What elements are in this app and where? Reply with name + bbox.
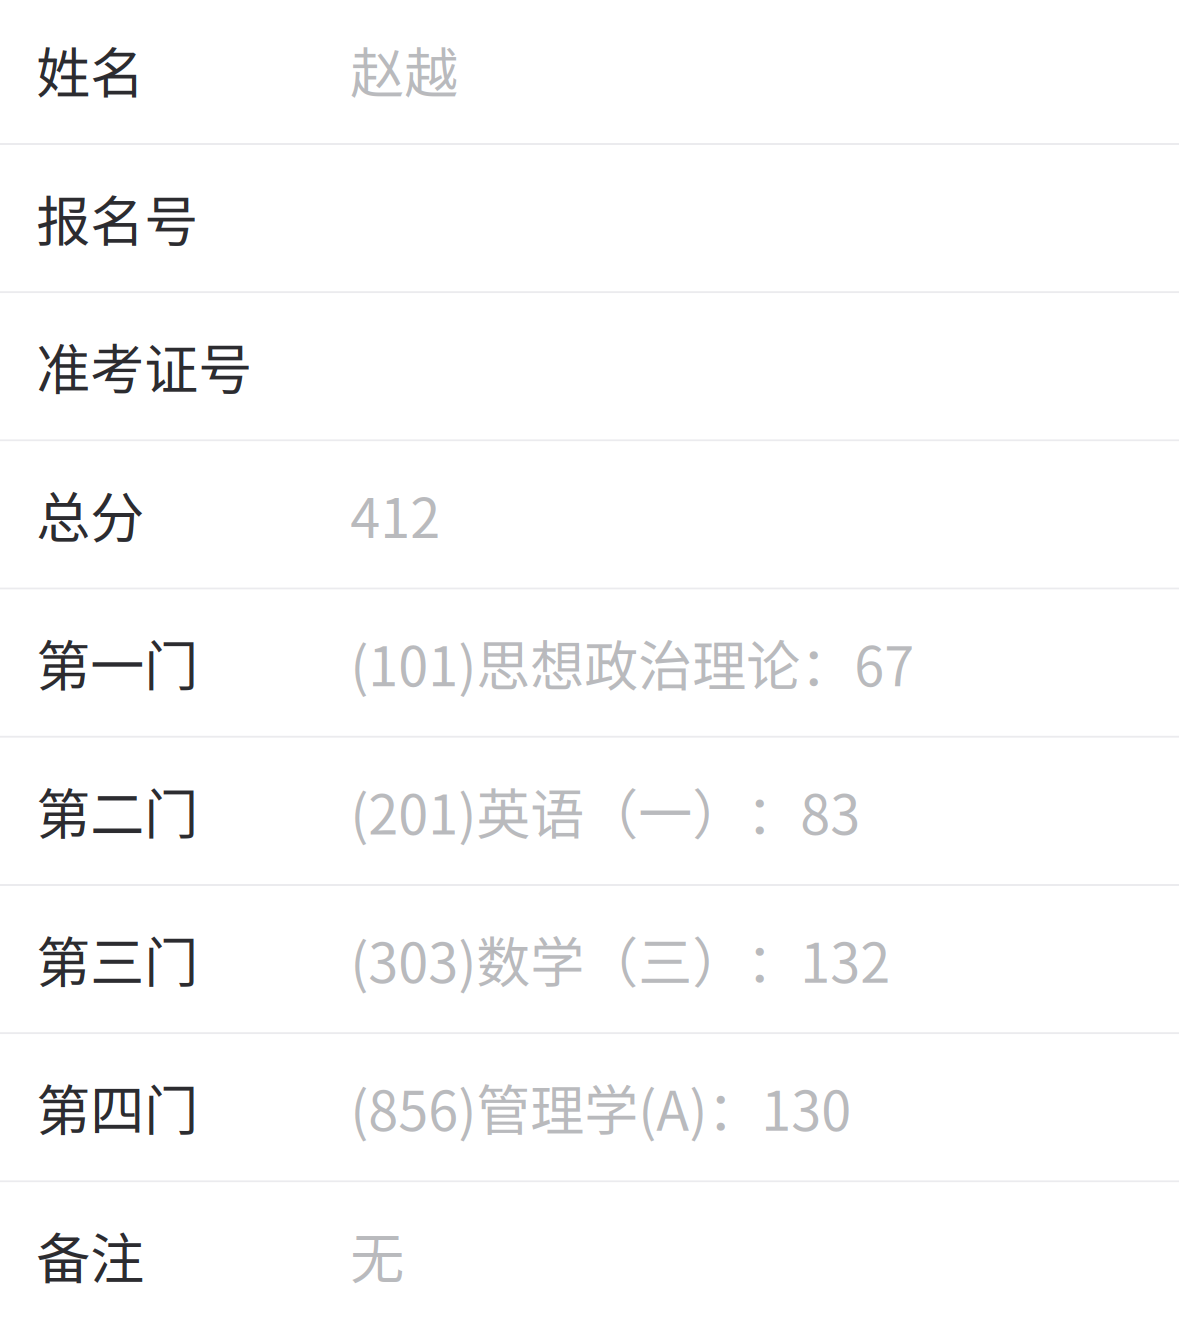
button[interactable]: 总分 (0, 441, 1179, 590)
staticText: 无 (350, 1216, 404, 1295)
button[interactable]: 第三门 (0, 886, 1179, 1034)
staticText: (856)管理学(A)：130 (350, 1068, 851, 1146)
button[interactable]: 第四门 (0, 1034, 1179, 1182)
button[interactable]: 准考证号 (0, 293, 1179, 441)
button[interactable]: 备注 (0, 1182, 1179, 1329)
button[interactable]: 报名号 (0, 145, 1179, 293)
staticText: 第四门 (36, 1068, 198, 1146)
staticText: 第二门 (36, 772, 198, 850)
staticText: 赵越 (350, 31, 458, 109)
staticText: 报名号 (36, 179, 198, 257)
staticText: 备注 (36, 1216, 144, 1295)
staticText: (201)英语（一）：83 (350, 772, 860, 850)
staticText: 姓名 (36, 31, 144, 109)
staticText: 第一门 (36, 624, 198, 702)
staticText: (303)数学（三）：132 (350, 920, 890, 998)
staticText: 412 (350, 475, 440, 554)
button[interactable]: 第一门 (0, 590, 1179, 738)
staticText: 第三门 (36, 920, 198, 998)
button[interactable]: 第二门 (0, 738, 1179, 886)
staticText: 准考证号 (36, 327, 252, 405)
staticText: (101)思想政治理论：67 (350, 624, 914, 702)
staticText: 总分 (36, 475, 144, 554)
button[interactable]: 姓名 (0, 0, 1179, 145)
